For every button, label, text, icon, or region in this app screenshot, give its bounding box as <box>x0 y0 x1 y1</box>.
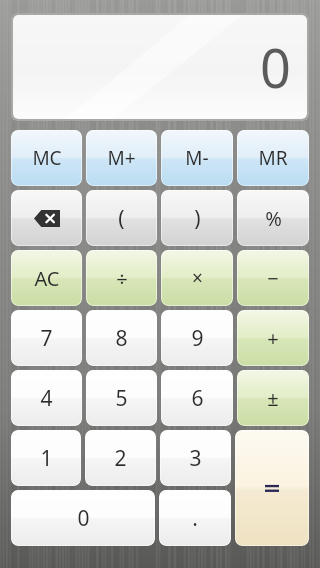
button[interactable]: M- <box>161 130 233 186</box>
staticText: 2 <box>114 444 127 473</box>
staticText: − <box>267 265 279 292</box>
staticText: ( <box>118 204 125 233</box>
button[interactable]: 8 <box>86 310 157 366</box>
button[interactable]: ) <box>161 190 233 246</box>
staticText: 5 <box>115 384 128 413</box>
staticText: M- <box>185 145 209 171</box>
button[interactable]: Equals <box>235 430 309 546</box>
staticText: ÷ <box>116 265 128 292</box>
staticText: 3 <box>189 444 202 473</box>
staticText: MR <box>258 145 288 171</box>
button[interactable]: 5 <box>86 370 157 426</box>
staticText: 9 <box>191 324 204 353</box>
button[interactable]: 9 <box>161 310 233 366</box>
staticText: 4 <box>40 384 53 413</box>
button[interactable]: ( <box>86 190 157 246</box>
button[interactable]: Backspace <box>11 190 82 246</box>
button[interactable]: ± <box>237 370 309 426</box>
staticText: ± <box>267 385 279 412</box>
button[interactable]: + <box>237 310 309 366</box>
button[interactable]: MC <box>11 130 82 186</box>
staticText: M+ <box>107 145 136 171</box>
button[interactable]: 4 <box>11 370 82 426</box>
button[interactable]: M+ <box>86 130 157 186</box>
staticText: × <box>192 265 203 291</box>
staticText: + <box>267 325 279 352</box>
button[interactable]: ÷ <box>86 250 157 306</box>
button[interactable]: . <box>159 490 231 546</box>
staticText: AC <box>34 265 60 292</box>
staticText: 7 <box>40 324 53 353</box>
button[interactable]: AC <box>11 250 82 306</box>
staticText: 0 <box>77 504 90 533</box>
button[interactable]: − <box>237 250 309 306</box>
button[interactable]: 2 <box>85 430 156 486</box>
button[interactable]: 7 <box>11 310 82 366</box>
button[interactable]: % <box>237 190 309 246</box>
button[interactable]: 6 <box>161 370 233 426</box>
staticText: 1 <box>40 444 53 473</box>
staticText: ) <box>194 204 201 233</box>
staticText: 8 <box>115 324 128 353</box>
staticText: 0 <box>260 30 291 104</box>
button[interactable]: 1 <box>11 430 81 486</box>
staticText: . <box>192 504 198 533</box>
button[interactable]: MR <box>237 130 309 186</box>
staticText: % <box>265 205 282 232</box>
staticText: 6 <box>191 384 204 413</box>
button[interactable]: × <box>161 250 233 306</box>
button[interactable]: 3 <box>160 430 231 486</box>
staticText: MC <box>32 145 62 171</box>
button[interactable]: 0 <box>11 490 155 546</box>
